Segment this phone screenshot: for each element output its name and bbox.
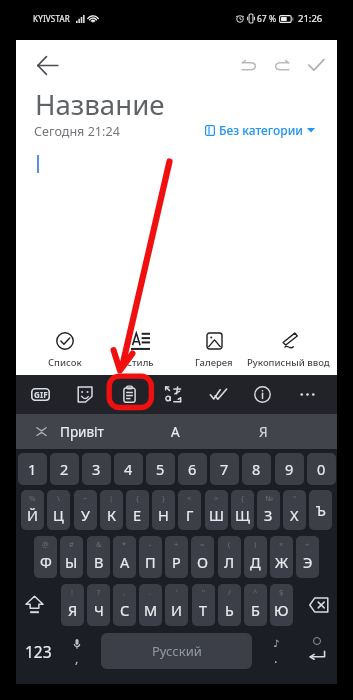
button[interactable]: ': [165, 584, 188, 626]
button[interactable]: #: [60, 536, 83, 578]
button[interactable]: !: [61, 584, 84, 626]
button[interactable]: №: [257, 490, 280, 530]
staticText: А: [120, 552, 130, 572]
staticText: >: [214, 493, 219, 503]
button[interactable]: Я: [223, 414, 303, 449]
button[interactable]: Spell check: [198, 377, 238, 412]
staticText: *: [122, 539, 127, 549]
staticText: Ц: [53, 505, 64, 525]
button[interactable]: =: [191, 536, 214, 578]
button[interactable]: ,: [113, 584, 136, 626]
staticText: ~: [83, 493, 88, 503]
button[interactable]: -: [139, 536, 162, 578]
staticText: Ш: [209, 505, 225, 525]
staticText: Ф: [40, 552, 52, 572]
button[interactable]: 3: [82, 453, 111, 485]
button[interactable]: {: [126, 490, 149, 530]
button[interactable]: Undo: [231, 48, 265, 82]
button[interactable]: Галерея: [166, 332, 262, 374]
button[interactable]: Без категории: [205, 121, 315, 139]
button[interactable]: 123: [17, 633, 59, 669]
staticText: {: [136, 493, 139, 503]
staticText: ^: [253, 587, 258, 597]
button[interactable]: Emoji: [260, 633, 292, 669]
button[interactable]: Done: [299, 48, 333, 82]
button[interactable]: >: [205, 490, 228, 530]
button[interactable]: ): [244, 536, 267, 578]
button[interactable]: 0: [307, 453, 336, 485]
staticText: Й: [27, 505, 38, 525]
button[interactable]: 4: [114, 453, 143, 485]
button[interactable]: 7: [210, 453, 239, 485]
button[interactable]: .: [139, 584, 162, 626]
button[interactable]: (: [218, 536, 241, 578]
button[interactable]: ^: [244, 584, 267, 626]
button[interactable]: Стиль: [92, 332, 188, 374]
staticText: Л: [224, 552, 235, 572]
staticText: Т: [199, 600, 208, 620]
button[interactable]: ×: [270, 536, 293, 578]
button[interactable]: Clipboard: [109, 377, 149, 412]
button[interactable]: /: [218, 584, 241, 626]
staticText: (: [228, 539, 231, 549]
button[interactable]: \: [47, 490, 70, 530]
button[interactable]: Русский: [101, 633, 252, 669]
button[interactable]: 8: [242, 453, 271, 485]
button[interactable]: Info: [242, 377, 282, 412]
button[interactable]: Backspace: [301, 584, 337, 626]
button[interactable]: Collapse keyboard: [24, 414, 58, 449]
staticText: GIF: [34, 389, 48, 400]
button[interactable]: +: [165, 536, 188, 578]
staticText: Х: [290, 505, 299, 525]
button[interactable]: ": [192, 584, 215, 626]
staticText: Э: [303, 552, 313, 572]
staticText: ♪: [273, 638, 280, 650]
button[interactable]: А: [135, 414, 215, 449]
button[interactable]: 6: [178, 453, 207, 485]
button[interactable]: 1: [18, 453, 47, 485]
staticText: Ь: [225, 600, 234, 620]
button[interactable]: 9: [275, 453, 304, 485]
button[interactable]: Рукописный ввод: [240, 332, 336, 374]
staticText: З: [264, 505, 273, 525]
staticText: П: [145, 552, 156, 572]
staticText: ): [254, 539, 257, 549]
button[interactable]: ?: [87, 584, 110, 626]
button[interactable]: Список: [17, 332, 113, 374]
button[interactable]: Привіт: [60, 414, 172, 449]
button[interactable]: Stickers: [64, 377, 104, 412]
button[interactable]: Shift: [16, 584, 52, 626]
button[interactable]: |: [100, 490, 123, 530]
staticText: ": [202, 587, 206, 597]
button[interactable]: ~: [74, 490, 97, 530]
button[interactable]: {: [231, 490, 254, 530]
staticText: ?: [97, 587, 101, 597]
button[interactable]: %: [21, 490, 44, 530]
button[interactable]: 2: [50, 453, 79, 485]
staticText: %: [29, 493, 36, 503]
staticText: =: [200, 539, 205, 549]
button[interactable]: $: [270, 584, 293, 626]
staticText: №: [265, 493, 273, 503]
button[interactable]: 5: [146, 453, 175, 485]
button[interactable]: GIF: [20, 377, 60, 412]
button[interactable]: ÷: [296, 536, 319, 578]
button[interactable]: Ъ: [309, 490, 332, 530]
button[interactable]: More options: [287, 377, 327, 412]
staticText: Стиль: [126, 356, 154, 369]
button[interactable]: Translate: [153, 377, 193, 412]
staticText: 67 %: [257, 13, 276, 25]
button[interactable]: &: [87, 536, 110, 578]
button[interactable]: <: [178, 490, 201, 530]
staticText: ×: [279, 539, 284, 549]
staticText: Галерея: [195, 356, 233, 369]
staticText: Е: [133, 505, 142, 525]
button[interactable]: Redo: [265, 48, 299, 82]
button[interactable]: Back: [30, 48, 64, 82]
button[interactable]: }: [152, 490, 175, 530]
button[interactable]: Voice input: [61, 633, 93, 669]
button[interactable]: *: [113, 536, 136, 578]
button[interactable]: ": [283, 490, 306, 530]
button[interactable]: Enter: [299, 633, 335, 669]
button[interactable]: @: [34, 536, 57, 578]
